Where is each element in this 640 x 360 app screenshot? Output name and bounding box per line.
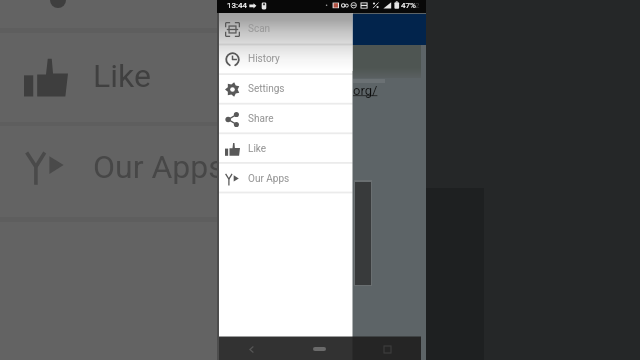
staticText: Like: [93, 57, 151, 95]
button[interactable]: Share: [217, 104, 353, 134]
staticText: Like: [248, 143, 267, 155]
staticText: 13:44: [227, 1, 247, 10]
staticText: Scan: [248, 23, 271, 35]
staticText: Our Apps: [248, 173, 290, 185]
staticText: Our Apps: [93, 148, 225, 186]
button[interactable]: Back: [217, 337, 285, 360]
button[interactable]: Home: [285, 337, 353, 360]
button[interactable]: Like: [217, 134, 353, 164]
staticText: 47%: [401, 1, 416, 10]
button[interactable]: Our Apps: [217, 164, 353, 194]
staticText: org/: [353, 83, 378, 98]
button[interactable]: Settings: [217, 74, 353, 104]
staticText: History: [248, 53, 280, 65]
staticText: Share: [248, 113, 274, 125]
staticText: 2: [415, 1, 420, 10]
button[interactable]: Scan: [217, 14, 353, 44]
button[interactable]: History: [217, 44, 353, 74]
staticText: Settings: [248, 83, 285, 95]
